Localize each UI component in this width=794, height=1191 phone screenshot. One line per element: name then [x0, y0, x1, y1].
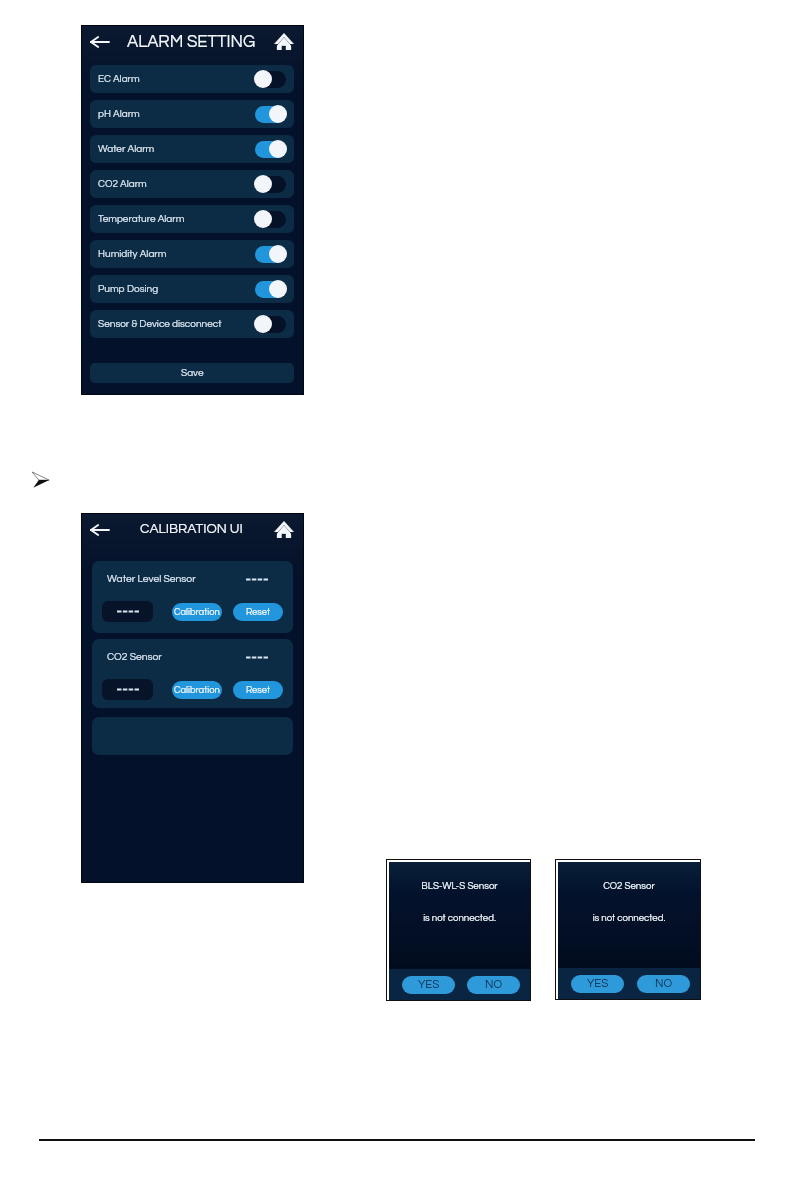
button[interactable]: Humidity Alarm [90, 240, 294, 268]
button[interactable]: Home [271, 516, 297, 542]
button[interactable]: Water Alarm [90, 135, 294, 163]
staticText: YES [587, 978, 609, 990]
button[interactable]: YES [402, 976, 455, 994]
button[interactable]: Back [86, 517, 112, 543]
staticText: Reset [246, 607, 270, 617]
button[interactable]: NO [467, 976, 520, 994]
staticText: ALARM SETTING [127, 33, 256, 50]
staticText: is not connected. [389, 913, 530, 923]
button[interactable]: Pump Dosing [90, 275, 294, 303]
staticText: EC Alarm [98, 74, 140, 84]
button[interactable]: Reset [233, 603, 283, 621]
staticText: is not connected. [558, 913, 700, 923]
staticText: Water Alarm [98, 144, 155, 154]
staticText: Humidity Alarm [98, 249, 167, 259]
staticText: Temperature Alarm [98, 214, 185, 224]
staticText: Calibration [174, 685, 220, 695]
staticText: CO2 Sensor [558, 881, 700, 891]
staticText: NO [655, 978, 673, 990]
button[interactable]: CO2 Alarm [90, 170, 294, 198]
button[interactable]: Back [86, 29, 112, 55]
button[interactable]: Calibration [172, 681, 222, 699]
button[interactable]: Sensor & Device disconnect [90, 310, 294, 338]
button[interactable]: Save [90, 363, 294, 383]
staticText: Water Level Sensor [107, 574, 196, 585]
button[interactable]: Temperature Alarm [90, 205, 294, 233]
staticText: BLS-WL-S Sensor [389, 881, 530, 891]
staticText: Pump Dosing [98, 284, 159, 294]
staticText: YES [418, 979, 440, 991]
staticText: NO [485, 979, 503, 991]
button[interactable]: pH Alarm [90, 100, 294, 128]
staticText: Save [181, 368, 204, 378]
staticText: CO2 Alarm [98, 179, 147, 189]
staticText: CO2 Sensor [107, 652, 162, 663]
staticText: Reset [246, 685, 270, 695]
button[interactable]: EC Alarm [90, 65, 294, 93]
button[interactable]: Reset [233, 681, 283, 699]
staticText: Sensor & Device disconnect [98, 319, 222, 329]
staticText: pH Alarm [98, 109, 140, 119]
staticText: CALIBRATION UI [140, 522, 243, 536]
button[interactable]: NO [637, 975, 690, 993]
staticText: Calibration [174, 607, 220, 617]
button[interactable]: YES [571, 975, 624, 993]
button[interactable]: Calibration [172, 603, 222, 621]
button[interactable]: Home [271, 28, 297, 54]
